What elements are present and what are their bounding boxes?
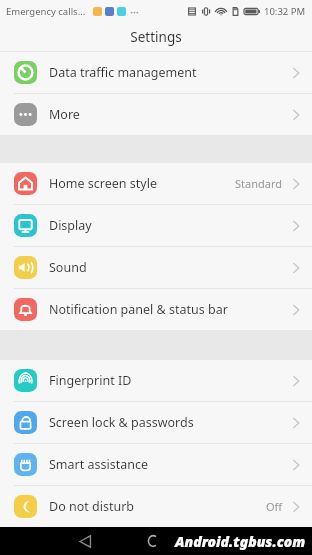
staticText: Smart assistance: [49, 456, 148, 473]
button[interactable]: Display: [0, 205, 312, 246]
staticText: Emergency calls…: [6, 5, 86, 18]
staticText: Do not disturb: [49, 498, 134, 515]
staticText: Home screen style: [49, 175, 157, 192]
staticText: Fingerprint ID: [49, 372, 132, 389]
staticText: Data traffic management: [49, 64, 197, 81]
staticText: 10:32 PM: [264, 5, 306, 18]
button[interactable]: Sound: [0, 247, 312, 288]
button[interactable]: Fingerprint ID: [0, 360, 312, 401]
staticText: Android.tgbus.com: [175, 532, 306, 551]
button[interactable]: Home: [140, 528, 166, 554]
button[interactable]: Back: [72, 528, 98, 554]
button[interactable]: Screen lock & passwords: [0, 402, 312, 443]
staticText: Settings: [130, 28, 182, 46]
staticText: Off: [266, 499, 283, 514]
staticText: Notification panel & status bar: [49, 301, 228, 318]
staticText: More: [49, 106, 80, 123]
staticText: Screen lock & passwords: [49, 414, 194, 431]
button[interactable]: Do not disturb: [0, 486, 312, 527]
button[interactable]: Smart assistance: [0, 444, 312, 485]
staticText: Standard: [235, 176, 283, 191]
staticText: Display: [49, 217, 92, 234]
button[interactable]: More: [0, 94, 312, 135]
button[interactable]: Notification panel & status bar: [0, 289, 312, 330]
button[interactable]: Home screen style: [0, 163, 312, 204]
staticText: Sound: [49, 259, 87, 276]
button[interactable]: Data traffic management: [0, 52, 312, 93]
